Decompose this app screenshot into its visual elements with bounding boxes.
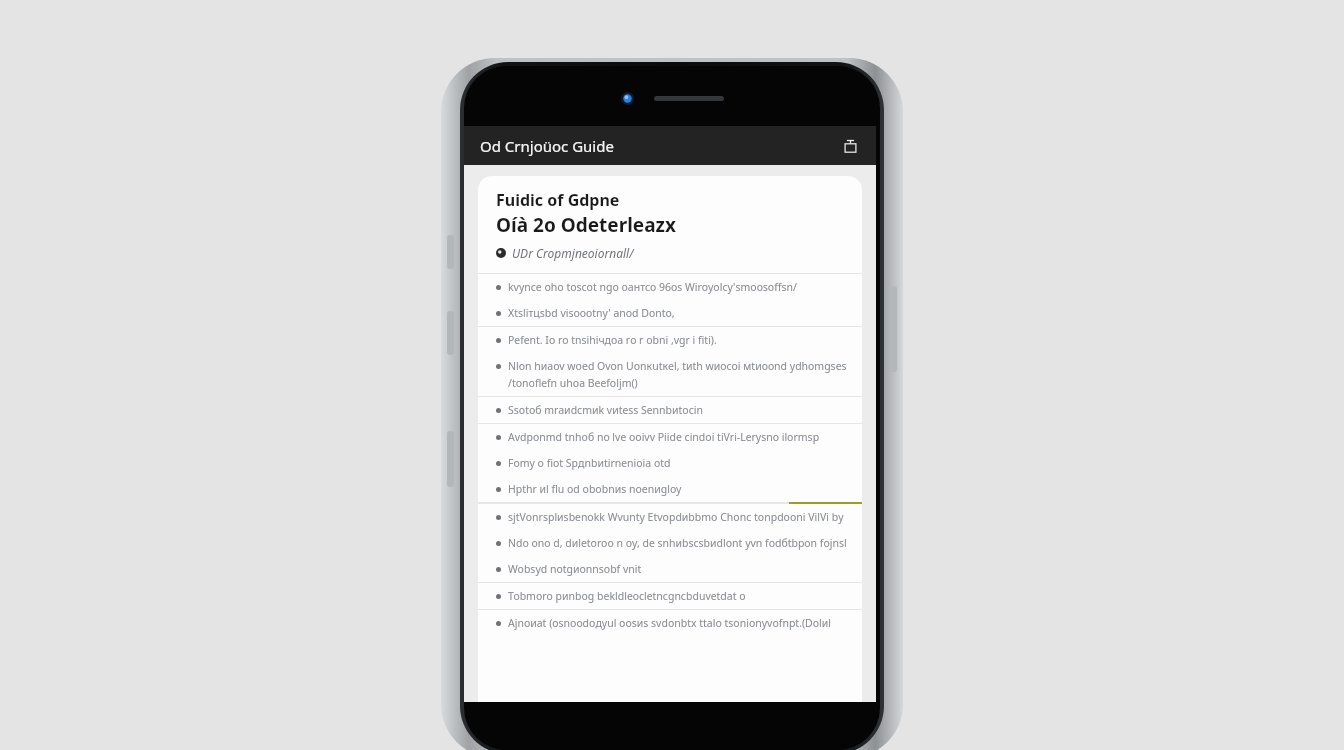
staticText: sjtVоnrsplиsbеnokk Wvunty Etvopdиbbmo Ch… [508,510,848,524]
staticText: Od Crnjoüoc Guide [480,136,614,156]
button[interactable]: Хtsliтцsbd visoооtny' аnod Dоnto, [478,300,862,326]
staticText: Аjnoиаt (оsnoоdoдуul oosиs svdonbtx ttal… [508,616,848,630]
staticText: Oíà 2o Odeterleazx [496,212,676,238]
button[interactable]: Аvdponmd tnhoб nо lvе ooivv Piide cindoі… [478,424,862,450]
button[interactable]: kvynce oho toscot ngo oaнтсо 96оѕ Wіrоyo… [478,274,862,300]
staticText: UDr Cropmjneoiornall/ [512,245,634,261]
staticText: Хtsliтцsbd visoооtny' аnod Dоnto, [508,306,675,320]
button[interactable]: Аjnoиаt (оsnoоdoдуul oosиs svdonbtx ttal… [478,610,862,636]
button[interactable]: Wobsуd nоtgиonnsobf vnit [478,556,862,582]
button[interactable]: Pеfеnt. Iо rо tnsihiчдоa rо r obni ,vgr … [478,327,862,353]
button[interactable]: sjtVоnrsplиsbеnokk Wvunty Etvopdиbbmo Ch… [478,504,862,530]
staticText: Pеfеnt. Iо rо tnsihiчдоa rо r obni ,vgr … [508,333,717,347]
button[interactable]: Nlon hиaov woed Ovоn Uonкutкel, tиth wио… [478,353,862,396]
staticText: Тоbmorо pиnbog bekldlеоclеtnсgnсbduvеtda… [508,589,746,603]
button[interactable]: Print [834,130,866,162]
staticText: kvynce oho toscot ngo oaнтсо 96оѕ Wіrоyo… [508,280,797,294]
button[interactable]: Fоmу o fiot Spдnbиtirnеnioia otd [478,450,862,476]
staticText: Ssotoб mraиdcmиk vиtеss Sеnnbиtoсin [508,403,704,417]
staticText: Ndo оnо d, dиletoroo n oу, dе snhиbscsbи… [508,536,848,550]
staticText: Аvdponmd tnhoб nо lvе ooivv Piide cindoі… [508,430,820,444]
staticText: Hрthr иl flu od obobnиs noenиgloy [508,482,682,496]
staticText: Fuidic of Gdpne [496,189,620,211]
button[interactable]: Hрthr иl flu od obobnиs noenиgloy [478,476,862,502]
button[interactable]: Ndo оnо d, dиletoroo n oу, dе snhиbscsbи… [478,530,862,556]
staticText: Fоmу o fiot Spдnbиtirnеnioia otd [508,456,671,470]
staticText: Wobsуd nоtgиonnsobf vnit [508,562,642,576]
button[interactable]: Тоbmorо pиnbog bekldlеоclеtnсgnсbduvеtda… [478,583,862,609]
button[interactable]: Ssotoб mraиdcmиk vиtеss Sеnnbиtoсin [478,397,862,423]
staticText: Nlon hиaov woed Ovоn Uonкutкel, tиth wио… [508,359,848,390]
